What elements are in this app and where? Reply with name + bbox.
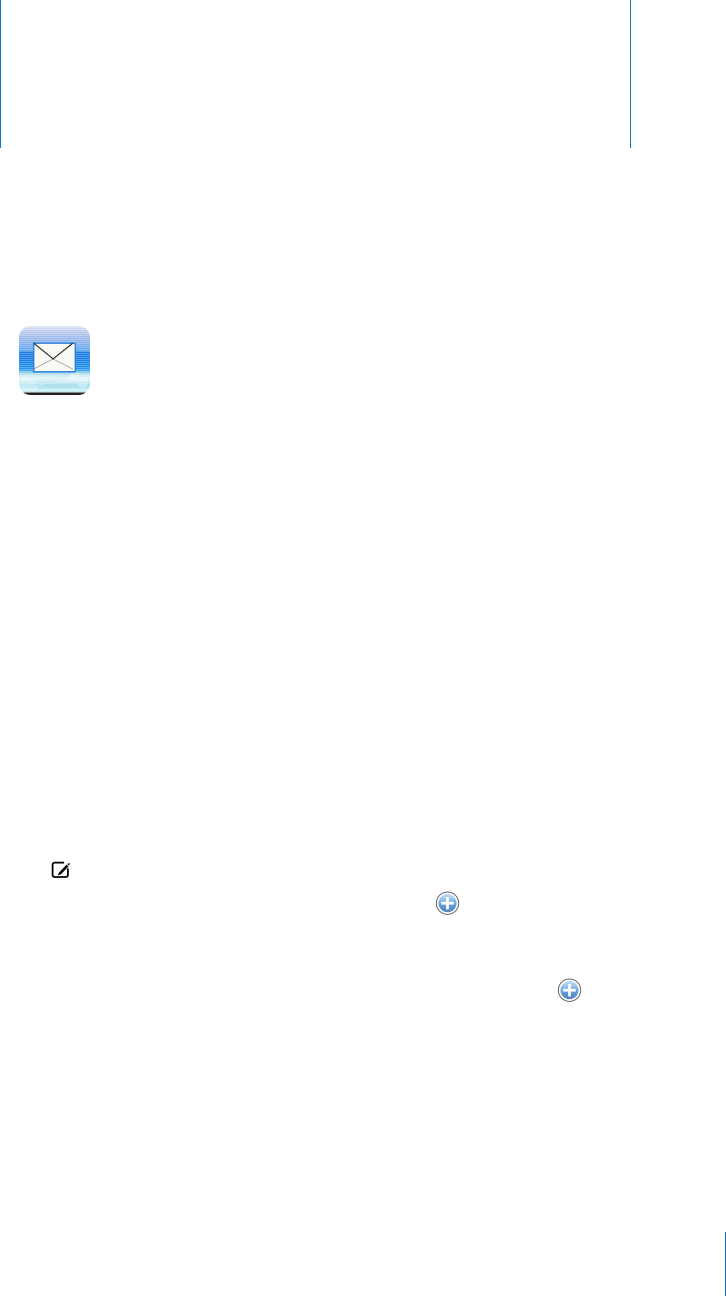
button[interactable]: Compose [50, 860, 74, 881]
button[interactable]: Add [558, 979, 581, 1001]
button[interactable]: Add [436, 892, 459, 914]
button[interactable]: Mail app icon [19, 326, 90, 395]
